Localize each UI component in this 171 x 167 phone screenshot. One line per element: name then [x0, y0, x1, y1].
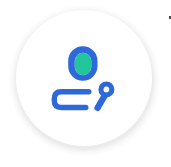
- button[interactable]: Account key: [16, 10, 152, 146]
